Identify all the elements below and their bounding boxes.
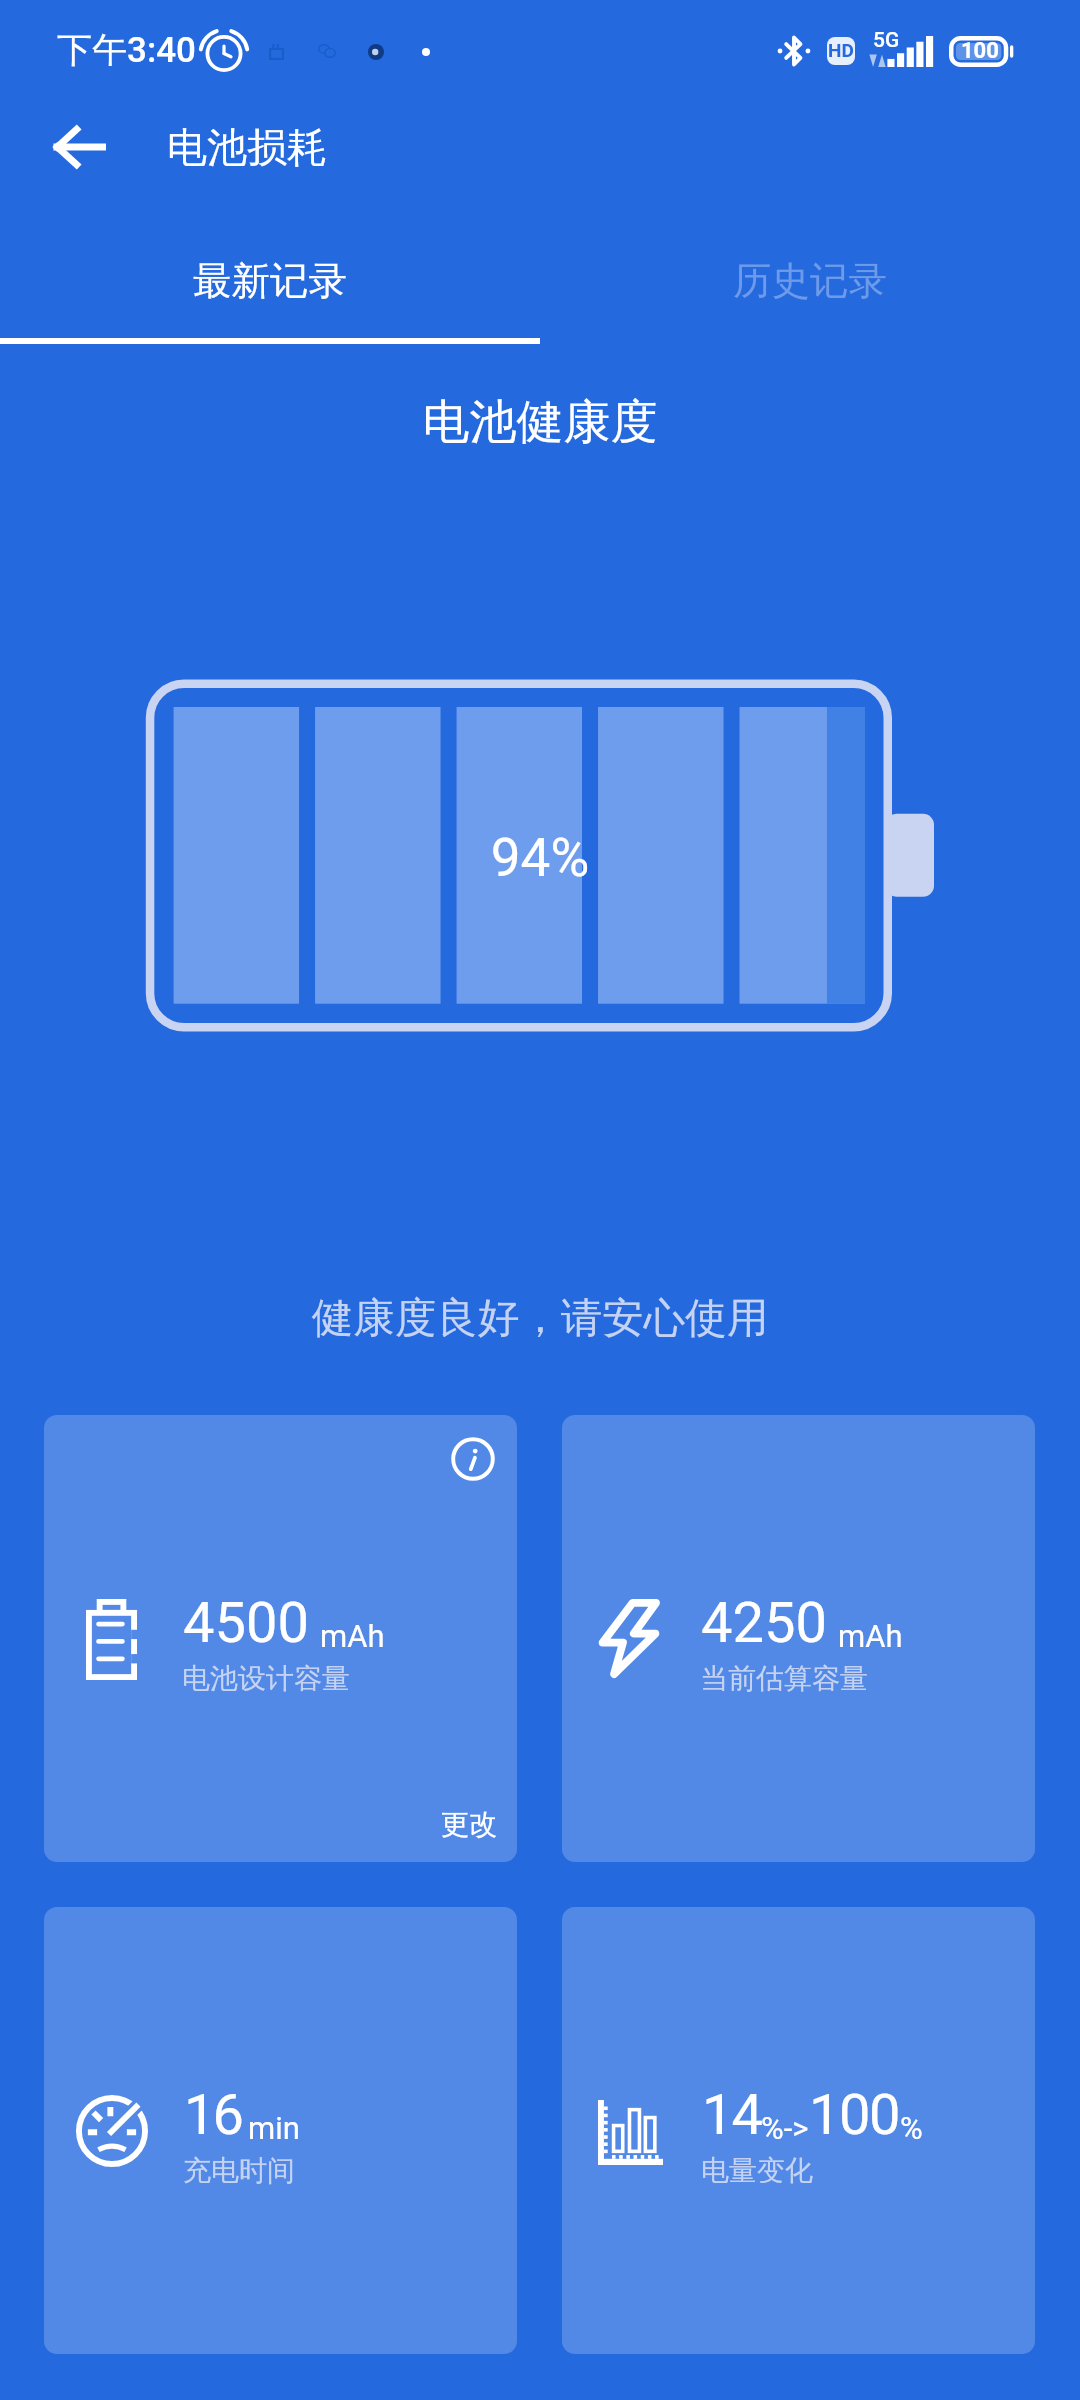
staticText: 14: [702, 2082, 761, 2148]
staticText: 94%: [0, 827, 1080, 889]
staticText: 16: [184, 2082, 241, 2148]
staticText: 电池设计容量: [182, 1661, 350, 1696]
staticText: 5G: [873, 28, 900, 53]
button[interactable]: 信息: [44, 1415, 517, 1862]
staticText: 100: [809, 2082, 899, 2148]
staticText: 4250: [701, 1590, 827, 1656]
button[interactable]: 返回: [24, 96, 134, 198]
button[interactable]: 14: [562, 1907, 1035, 2354]
staticText: 当前估算容量: [700, 1661, 868, 1696]
staticText: 最新记录: [193, 257, 347, 306]
staticText: 100: [961, 38, 999, 64]
staticText: min: [248, 2110, 300, 2146]
button[interactable]: 更改: [441, 1807, 497, 1842]
staticText: %->: [761, 2110, 809, 2146]
staticText: 下午3:40: [57, 28, 196, 72]
staticText: mAh: [320, 1618, 385, 1654]
staticText: 4500: [183, 1590, 309, 1656]
staticText: %: [900, 2110, 923, 2146]
button[interactable]: 16: [44, 1907, 517, 2354]
button[interactable]: 最新记录: [0, 198, 540, 344]
button[interactable]: 历史记录: [540, 198, 1080, 344]
button[interactable]: 信息: [451, 1437, 495, 1481]
staticText: HD: [828, 39, 854, 61]
staticText: mAh: [838, 1618, 903, 1654]
staticText: 健康度良好，请安心使用: [0, 1292, 1080, 1344]
staticText: 电量变化: [701, 2153, 813, 2188]
staticText: 电池健康度: [0, 393, 1080, 452]
staticText: 充电时间: [183, 2153, 295, 2188]
staticText: 历史记录: [733, 257, 887, 306]
staticText: 电池损耗: [167, 122, 327, 172]
button[interactable]: 4250: [562, 1415, 1035, 1862]
